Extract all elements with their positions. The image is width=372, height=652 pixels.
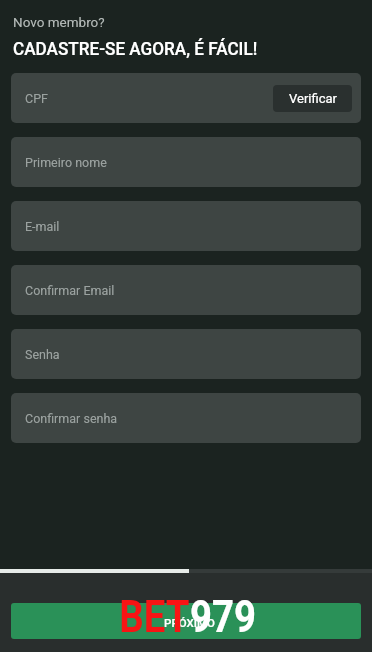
staticText: PRÓXIMO: [164, 616, 215, 629]
staticText: CADASTRE-SE AGORA, É FÁCIL!: [13, 38, 258, 59]
button[interactable]: E-mail: [11, 201, 361, 251]
staticText: Confirmar senha: [25, 411, 118, 426]
other: BET979: [119, 591, 257, 644]
button[interactable]: Confirmar Email: [11, 265, 361, 315]
button[interactable]: CPF: [11, 73, 361, 123]
staticText: Primeiro nome: [25, 155, 107, 170]
staticText: Novo membro?: [13, 14, 105, 30]
staticText: BET: [119, 591, 190, 644]
staticText: Confirmar Email: [25, 283, 115, 298]
button[interactable]: PRÓXIMO: [11, 603, 361, 639]
button[interactable]: Primeiro nome: [11, 137, 361, 187]
staticText: CPF: [25, 91, 48, 106]
staticText: E-mail: [25, 219, 60, 234]
staticText: 979: [190, 591, 257, 644]
other: Progresso do cadastro: [0, 569, 372, 573]
button[interactable]: Confirmar senha: [11, 393, 361, 443]
button[interactable]: Verificar: [273, 85, 352, 112]
button[interactable]: Senha: [11, 329, 361, 379]
staticText: Verificar: [289, 91, 337, 106]
staticText: Senha: [25, 347, 60, 362]
